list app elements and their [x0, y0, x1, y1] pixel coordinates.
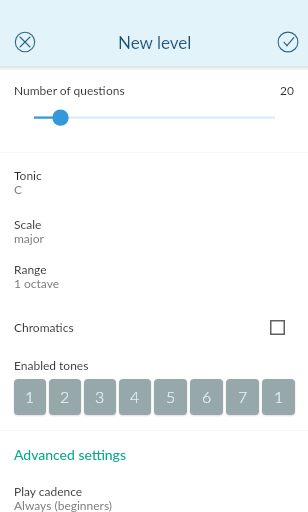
staticText: 1 [274, 387, 284, 406]
button[interactable]: 1 [14, 379, 46, 415]
staticText: Range [14, 262, 47, 276]
staticText: Scale [14, 217, 42, 231]
button[interactable]: Play cadence [0, 480, 308, 512]
staticText: 20 [280, 83, 294, 97]
staticText: 5 [166, 387, 176, 406]
button[interactable]: Close [3, 20, 47, 64]
button[interactable]: 6 [190, 379, 223, 415]
staticText: New level [118, 32, 192, 52]
staticText: 4 [130, 387, 140, 406]
button[interactable]: Scale [0, 213, 308, 249]
staticText: C [14, 182, 23, 196]
staticText: 2 [60, 387, 70, 406]
staticText: 7 [238, 387, 248, 406]
staticText: Always (beginners) [14, 498, 113, 512]
staticText: Number of questions [14, 83, 125, 97]
button[interactable]: 7 [226, 379, 259, 415]
staticText: Tonic [14, 168, 42, 182]
staticText: major [14, 231, 44, 245]
staticText: Play cadence [14, 484, 83, 498]
staticText: 3 [95, 387, 105, 406]
staticText: Advanced settings [14, 446, 126, 463]
button[interactable]: Chromatics [0, 312, 308, 342]
button[interactable]: 2 [49, 379, 81, 415]
button[interactable]: Tonic [0, 164, 308, 200]
staticText: 1 octave [14, 276, 60, 290]
staticText: 6 [202, 387, 212, 406]
button[interactable]: Confirm [266, 21, 308, 63]
button[interactable]: Advanced settings [0, 442, 308, 466]
staticText: Enabled tones [14, 358, 89, 372]
staticText: Chromatics [14, 320, 74, 334]
button[interactable]: Range [0, 258, 308, 294]
button[interactable]: Number of questions slider [0, 104, 308, 132]
button[interactable]: 5 [154, 379, 187, 415]
staticText: 1 [25, 387, 35, 406]
button[interactable]: 1 [262, 379, 295, 415]
button[interactable]: 4 [119, 379, 151, 415]
button[interactable]: 3 [84, 379, 116, 415]
